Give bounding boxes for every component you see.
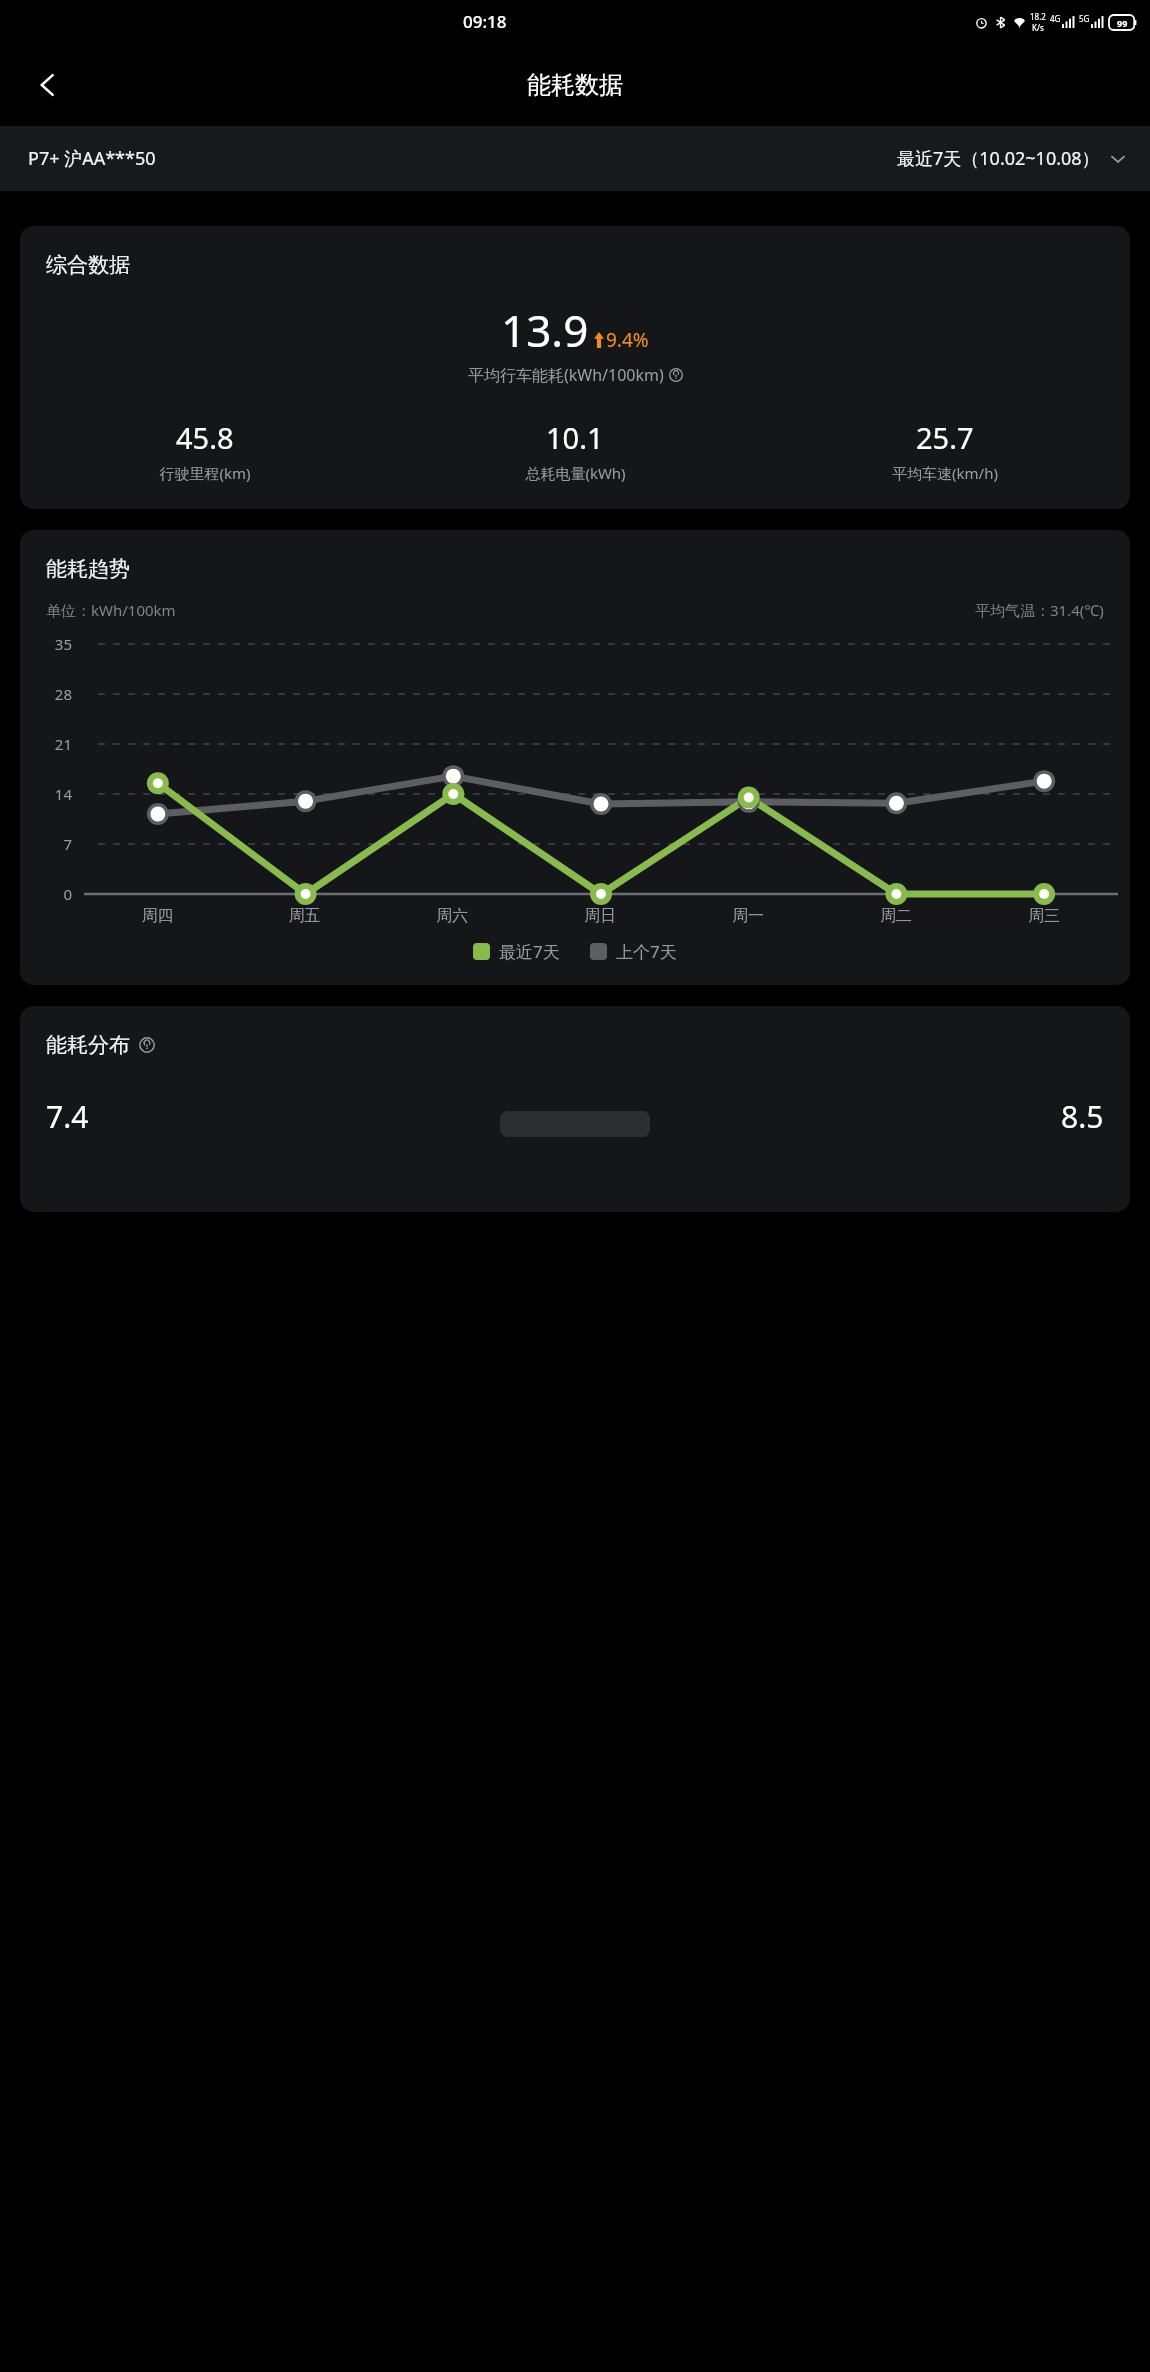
staticText: 09:18 <box>463 10 507 33</box>
button[interactable]: Back <box>22 59 74 111</box>
staticText: 能耗数据 <box>527 70 623 100</box>
staticText: 25.7 <box>916 418 974 457</box>
staticText: 上个7天 <box>616 940 677 963</box>
staticText: 7.4 <box>46 1096 89 1137</box>
staticText: 35 <box>44 634 72 654</box>
staticText: 周日 <box>526 906 674 926</box>
staticText: 能耗分布 <box>46 1032 130 1058</box>
button[interactable]: 上个7天 <box>590 940 677 963</box>
staticText: 13.9 <box>501 300 589 360</box>
staticText: 最近7天（10.02~10.08） <box>897 146 1100 171</box>
staticText: 周一 <box>674 906 822 926</box>
staticText: 综合数据 <box>46 252 130 278</box>
button[interactable]: 45.8 <box>20 418 390 483</box>
staticText: 28 <box>44 684 72 704</box>
staticText: 总耗电量(kWh) <box>525 463 626 483</box>
staticText: 8.5 <box>1061 1096 1104 1137</box>
staticText: 周六 <box>378 906 526 926</box>
button[interactable]: 能耗趋势 <box>20 530 1130 985</box>
staticText: 单位：kWh/100km <box>46 600 176 620</box>
staticText: 99 <box>1117 17 1128 29</box>
button[interactable]: 25.7 <box>760 418 1130 483</box>
button[interactable]: 综合数据 <box>20 226 1130 509</box>
staticText: 10.1 <box>546 418 604 457</box>
staticText: 周五 <box>231 906 378 926</box>
staticText: 周四 <box>84 906 231 926</box>
staticText: 9.4% <box>606 327 649 353</box>
staticText: 0 <box>44 884 72 904</box>
staticText: 7 <box>44 834 72 854</box>
staticText: 45.8 <box>176 418 234 457</box>
staticText: 平均车速(km/h) <box>892 463 998 483</box>
button[interactable]: 能耗分布 <box>20 1006 1130 1212</box>
staticText: 能耗趋势 <box>46 556 130 582</box>
staticText: 18.2 <box>1030 11 1046 22</box>
staticText: 周二 <box>822 906 970 926</box>
staticText: 21 <box>44 734 72 754</box>
staticText: 4G <box>1050 13 1061 24</box>
staticText: 5G <box>1079 13 1090 24</box>
staticText: 行驶里程(km) <box>159 463 251 483</box>
button[interactable]: P7+ 沪AA***50 <box>28 146 156 171</box>
button[interactable]: 10.1 <box>390 418 760 483</box>
staticText: 平均行车能耗(kWh/100km) <box>468 364 664 386</box>
button[interactable]: 最近7天（10.02~10.08） <box>897 146 1126 171</box>
button[interactable]: 最近7天 <box>473 940 560 963</box>
staticText: 14 <box>44 784 72 804</box>
staticText: 最近7天 <box>499 940 560 963</box>
staticText: K/s <box>1032 22 1044 33</box>
staticText: 平均气温：31.4(℃) <box>975 600 1104 620</box>
staticText: 周三 <box>970 906 1118 926</box>
